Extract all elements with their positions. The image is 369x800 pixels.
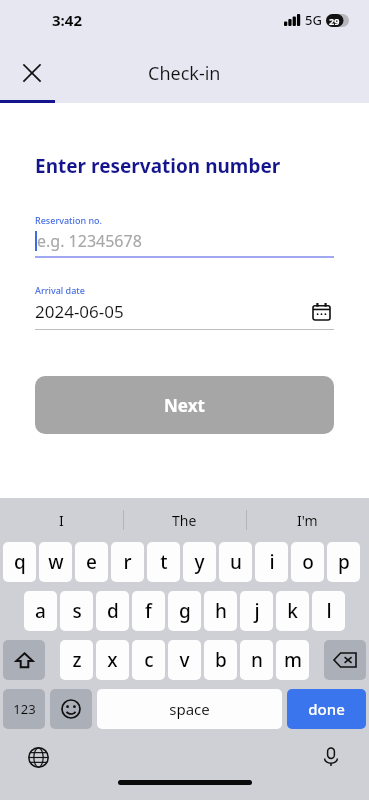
staticText: e xyxy=(86,549,97,575)
button[interactable]: Shift xyxy=(3,640,45,680)
button[interactable]: Pick date xyxy=(308,298,334,324)
button[interactable]: I'm xyxy=(246,498,369,542)
staticText: d xyxy=(107,598,119,624)
staticText: 29 xyxy=(329,15,340,27)
staticText: 3:42 xyxy=(52,10,82,30)
button[interactable]: f xyxy=(132,591,165,631)
button[interactable]: space xyxy=(97,689,282,729)
staticText: r xyxy=(123,549,132,575)
button[interactable]: Voice input xyxy=(315,741,347,773)
button[interactable]: r xyxy=(111,542,144,582)
staticText: w xyxy=(48,549,64,575)
button[interactable]: The xyxy=(123,498,246,542)
button[interactable]: Close xyxy=(8,49,56,97)
button[interactable]: Emoji xyxy=(50,689,92,729)
button[interactable]: i xyxy=(255,542,288,582)
staticText: o xyxy=(302,549,314,575)
button[interactable]: q xyxy=(3,542,36,582)
button[interactable]: w xyxy=(39,542,72,582)
staticText: a xyxy=(35,598,46,624)
staticText: 123 xyxy=(13,700,36,718)
staticText: y xyxy=(194,549,205,575)
button[interactable]: g xyxy=(168,591,201,631)
button[interactable]: b xyxy=(204,640,237,680)
button[interactable]: a xyxy=(24,591,57,631)
button[interactable]: done xyxy=(287,689,366,729)
button[interactable]: h xyxy=(204,591,237,631)
staticText: x xyxy=(107,647,118,673)
button[interactable]: y xyxy=(183,542,216,582)
button[interactable]: z xyxy=(60,640,93,680)
button[interactable]: k xyxy=(276,591,309,631)
staticText: space xyxy=(169,699,210,719)
staticText: i xyxy=(269,549,275,575)
staticText: 2024-06-05 xyxy=(35,300,124,323)
staticText: u xyxy=(230,549,242,575)
staticText: e.g. 12345678 xyxy=(37,230,142,252)
button[interactable]: l xyxy=(312,591,345,631)
staticText: b xyxy=(215,647,227,673)
button[interactable]: j xyxy=(240,591,273,631)
staticText: h xyxy=(215,598,227,624)
staticText: done xyxy=(308,699,345,719)
button[interactable]: e xyxy=(75,542,108,582)
staticText: Next xyxy=(164,394,205,417)
staticText: g xyxy=(179,598,191,624)
staticText: Enter reservation number xyxy=(35,153,281,179)
staticText: j xyxy=(254,598,260,624)
button[interactable]: Change keyboard xyxy=(22,741,54,773)
button[interactable]: Next xyxy=(35,376,334,434)
button[interactable]: m xyxy=(276,640,309,680)
staticText: n xyxy=(251,647,263,673)
staticText: Reservation no. xyxy=(35,214,103,226)
button[interactable]: v xyxy=(168,640,201,680)
staticText: t xyxy=(160,549,168,575)
staticText: q xyxy=(14,549,26,575)
staticText: l xyxy=(326,598,332,624)
staticText: The xyxy=(172,511,197,530)
button[interactable]: d xyxy=(96,591,129,631)
staticText: c xyxy=(144,647,154,673)
button[interactable]: t xyxy=(147,542,180,582)
staticText: m xyxy=(284,647,302,673)
button[interactable]: Backspace xyxy=(324,640,366,680)
staticText: p xyxy=(338,549,350,575)
staticText: I'm xyxy=(297,511,318,530)
staticText: Check-in xyxy=(148,61,221,86)
staticText: v xyxy=(179,647,190,673)
button[interactable]: u xyxy=(219,542,252,582)
staticText: s xyxy=(72,598,82,624)
button[interactable]: n xyxy=(240,640,273,680)
staticText: f xyxy=(145,598,152,624)
staticText: I xyxy=(59,511,64,530)
staticText: 5G xyxy=(305,11,322,29)
button[interactable]: s xyxy=(60,591,93,631)
button[interactable]: x xyxy=(96,640,129,680)
button[interactable]: c xyxy=(132,640,165,680)
button[interactable]: 123 xyxy=(3,689,45,729)
staticText: Arrival date xyxy=(35,284,85,296)
button[interactable]: Reservation no. xyxy=(35,214,334,258)
button[interactable]: p xyxy=(327,542,360,582)
staticText: k xyxy=(287,598,298,624)
staticText: z xyxy=(72,647,82,673)
button[interactable]: I xyxy=(0,498,123,542)
button[interactable]: Arrival date xyxy=(35,284,334,330)
button[interactable]: o xyxy=(291,542,324,582)
